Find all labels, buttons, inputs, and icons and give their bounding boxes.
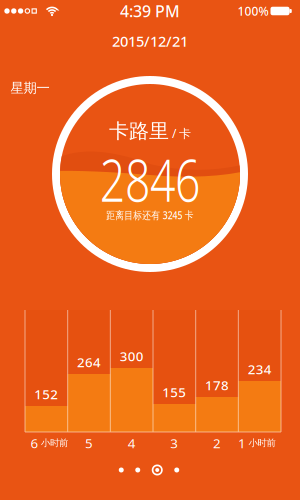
staticText: 距离目标还有 3245 卡 <box>96 208 203 222</box>
staticText: 4:39 PM <box>120 0 180 22</box>
staticText: 155 <box>162 383 186 401</box>
staticText: 小时前 <box>41 437 68 449</box>
staticText: 5 <box>85 434 93 452</box>
staticText: 星期一 <box>10 80 49 96</box>
button[interactable] <box>119 464 179 475</box>
staticText: 4 <box>128 434 136 452</box>
staticText: 1 <box>238 434 246 452</box>
staticText: 2 <box>213 434 221 452</box>
staticText: / 卡 <box>172 125 191 141</box>
staticText: 234 <box>248 360 272 378</box>
staticText: 6 <box>31 434 39 452</box>
staticText: 卡路里 <box>109 119 169 143</box>
staticText: 178 <box>205 376 229 394</box>
staticText: 152 <box>34 385 58 403</box>
staticText: 264 <box>77 353 101 371</box>
staticText: 小时前 <box>248 437 275 449</box>
staticText: 2015/12/21 <box>112 31 188 51</box>
staticText: 2846 <box>84 140 216 218</box>
staticText: 300 <box>120 347 144 365</box>
staticText: 3 <box>170 434 178 452</box>
staticText: 100% <box>237 3 268 19</box>
